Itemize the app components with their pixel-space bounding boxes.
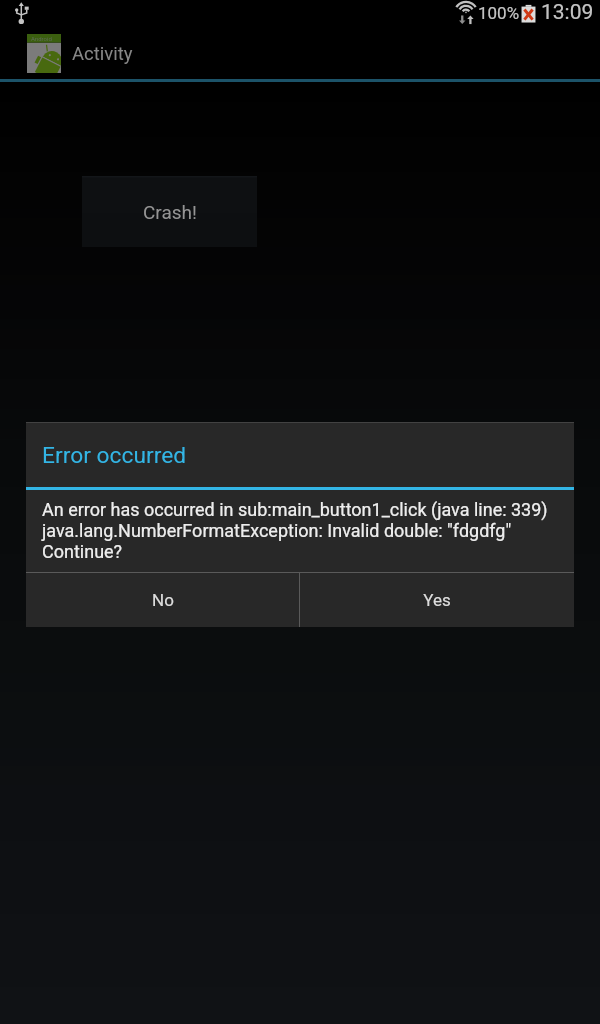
staticText: Yes bbox=[423, 590, 451, 610]
other: USB connected bbox=[11, 2, 32, 24]
staticText: No bbox=[152, 590, 174, 610]
staticText: Crash! bbox=[143, 201, 197, 223]
button[interactable]: Crash! bbox=[82, 176, 257, 247]
staticText: Android bbox=[31, 35, 52, 42]
button[interactable]: Yes bbox=[300, 573, 574, 627]
button[interactable]: No bbox=[26, 573, 299, 627]
staticText: 100% bbox=[478, 3, 520, 23]
button[interactable]: Android bbox=[0, 27, 147, 79]
staticText: An error has occurred in sub:main_button… bbox=[42, 499, 566, 562]
staticText: 13:09 bbox=[541, 0, 594, 25]
staticText: Activity bbox=[72, 43, 133, 65]
staticText: Error occurred bbox=[42, 442, 187, 469]
